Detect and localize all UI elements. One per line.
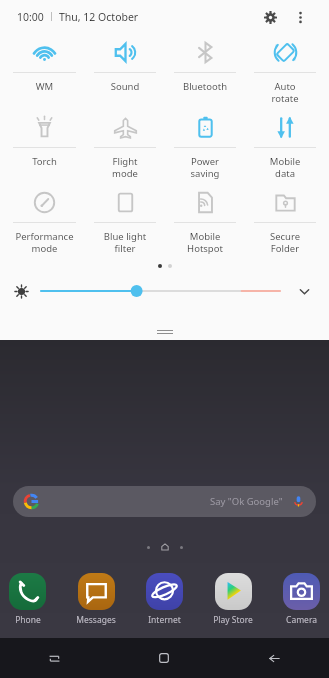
button[interactable]: Torch bbox=[4, 108, 85, 180]
button[interactable]: Internet bbox=[146, 573, 183, 626]
staticText: Blue light filter bbox=[85, 230, 165, 255]
staticText: Auto rotate bbox=[245, 80, 325, 105]
staticText: Power saving bbox=[165, 155, 245, 180]
staticText: Secure Folder bbox=[245, 230, 325, 255]
staticText: Messages bbox=[76, 614, 116, 626]
button[interactable]: Phone bbox=[9, 573, 46, 626]
button[interactable]: Back bbox=[219, 638, 329, 678]
staticText: Internet bbox=[148, 614, 181, 626]
staticText: Mobile data bbox=[245, 155, 325, 180]
button[interactable]: Mobile data bbox=[245, 108, 325, 180]
button[interactable]: Settings bbox=[258, 5, 282, 29]
button[interactable]: WM bbox=[4, 33, 85, 105]
button[interactable]: Flight mode bbox=[85, 108, 165, 180]
staticText: Torch bbox=[4, 155, 85, 168]
staticText: Say "Ok Google" bbox=[210, 495, 283, 508]
button[interactable]: Camera bbox=[283, 573, 320, 626]
button[interactable]: Auto rotate bbox=[245, 33, 325, 105]
button[interactable]: Mobile Hotspot bbox=[165, 183, 245, 255]
button[interactable]: More options bbox=[288, 5, 312, 29]
staticText: Bluetooth bbox=[165, 80, 245, 93]
button[interactable]: Recents bbox=[0, 638, 109, 678]
staticText: Performance mode bbox=[4, 230, 85, 255]
button[interactable]: Messages bbox=[76, 573, 116, 626]
button[interactable]: Expand brightness options bbox=[293, 280, 315, 302]
button[interactable]: Blue light filter bbox=[85, 183, 165, 255]
staticText: Thu, 12 October bbox=[59, 10, 139, 24]
staticText: Mobile Hotspot bbox=[165, 230, 245, 255]
button[interactable]: Power saving bbox=[165, 108, 245, 180]
staticText: Camera bbox=[286, 614, 317, 626]
button[interactable]: Play Store bbox=[213, 573, 253, 626]
button[interactable]: Performance mode bbox=[4, 183, 85, 255]
staticText: Sound bbox=[85, 80, 165, 93]
staticText: Flight mode bbox=[85, 155, 165, 180]
button[interactable]: Home bbox=[109, 638, 219, 678]
staticText: Phone bbox=[15, 614, 41, 626]
staticText: 10:00 bbox=[17, 10, 44, 24]
staticText: WM bbox=[4, 80, 85, 93]
button[interactable]: Brightness bbox=[41, 281, 280, 301]
button[interactable]: Bluetooth bbox=[165, 33, 245, 105]
button[interactable]: Sound bbox=[85, 33, 165, 105]
button[interactable]: Say "Ok Google" bbox=[13, 486, 316, 517]
button[interactable]: Secure Folder bbox=[245, 183, 325, 255]
staticText: Play Store bbox=[213, 614, 253, 626]
